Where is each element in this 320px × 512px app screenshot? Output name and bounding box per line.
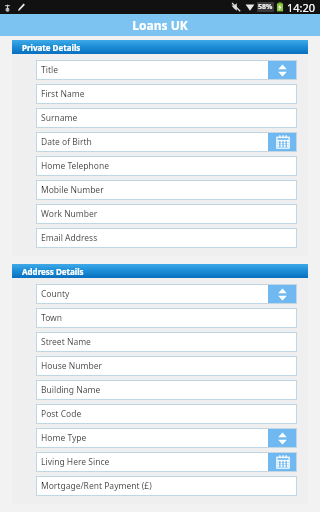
- staticText: Loans UK: [132, 17, 188, 33]
- button[interactable]: Home Type: [36, 428, 297, 448]
- button[interactable]: Surname: [36, 108, 297, 128]
- button[interactable]: Mortgage/Rent Payment (£): [36, 476, 297, 496]
- button[interactable]: Work Number: [36, 204, 297, 224]
- staticText: Title: [41, 64, 268, 76]
- staticText: Post Code: [41, 408, 297, 420]
- button[interactable]: Email Address: [36, 228, 297, 248]
- staticText: Home Telephone: [41, 160, 297, 172]
- staticText: Mobile Number: [41, 184, 297, 196]
- staticText: Street Name: [41, 336, 297, 348]
- button[interactable]: Open dropdown: [268, 428, 297, 448]
- button[interactable]: Title: [36, 60, 297, 80]
- staticText: 14:20: [287, 0, 316, 14]
- staticText: Email Address: [41, 232, 297, 244]
- button[interactable]: Post Code: [36, 404, 297, 424]
- button[interactable]: Date of Birth: [36, 132, 297, 152]
- staticText: Work Number: [41, 208, 297, 220]
- button[interactable]: Open dropdown: [268, 284, 297, 304]
- staticText: Date of Birth: [41, 136, 268, 148]
- staticText: Address Details: [22, 266, 84, 277]
- button[interactable]: Pick date: [268, 132, 297, 152]
- button[interactable]: Address Details: [12, 264, 308, 278]
- button[interactable]: Loans UK: [0, 14, 320, 36]
- staticText: Living Here Since: [41, 456, 268, 468]
- button[interactable]: Open dropdown: [268, 60, 297, 80]
- button[interactable]: Town: [36, 308, 297, 328]
- staticText: House Number: [41, 360, 297, 372]
- button[interactable]: House Number: [36, 356, 297, 376]
- button[interactable]: County: [36, 284, 297, 304]
- staticText: 58%: [258, 2, 273, 12]
- staticText: Private Details: [22, 42, 81, 53]
- button[interactable]: Street Name: [36, 332, 297, 352]
- button[interactable]: Living Here Since: [36, 452, 297, 472]
- staticText: Home Type: [41, 432, 268, 444]
- button[interactable]: Pick date: [268, 452, 297, 472]
- button[interactable]: Building Name: [36, 380, 297, 400]
- button[interactable]: Home Telephone: [36, 156, 297, 176]
- button[interactable]: Private Details: [12, 40, 308, 54]
- staticText: First Name: [41, 88, 297, 100]
- staticText: County: [41, 288, 268, 300]
- staticText: Town: [41, 312, 297, 324]
- staticText: Mortgage/Rent Payment (£): [41, 480, 297, 492]
- staticText: Building Name: [41, 384, 297, 396]
- button[interactable]: First Name: [36, 84, 297, 104]
- staticText: Surname: [41, 112, 297, 124]
- button[interactable]: Mobile Number: [36, 180, 297, 200]
